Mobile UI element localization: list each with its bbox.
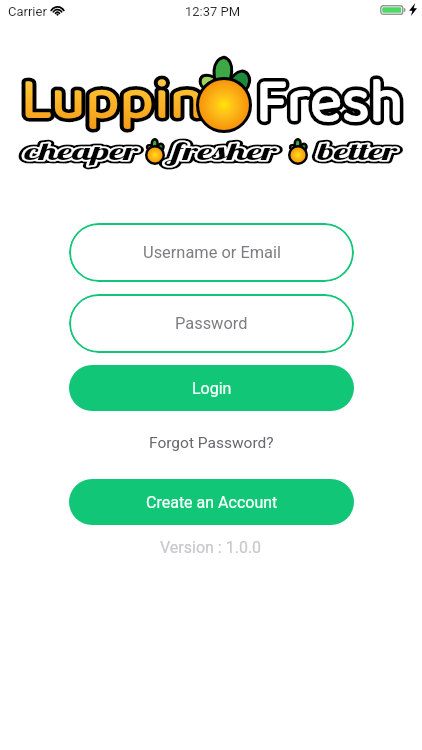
staticText: better [317,136,397,166]
staticText: Username or Email [143,243,281,262]
button[interactable]: Username or Email [69,223,354,282]
staticText: Login [192,379,232,398]
staticText: better [317,136,397,166]
staticText: cheaper [24,136,138,166]
button[interactable]: Login [69,365,354,411]
staticText: Create an Account [146,493,278,512]
staticText: fresher [172,136,277,166]
staticText: 12:37 PM [185,4,241,19]
staticText: Version : 1.0.0 [160,538,262,557]
staticText: Luppin [21,57,205,147]
button[interactable]: Forgot Password? [137,427,286,459]
button[interactable]: Password [69,294,354,353]
staticText: Password [175,314,248,333]
staticText: better [317,136,397,166]
staticText: Fresh [256,54,404,152]
staticText: fresher [172,136,277,166]
staticText: Luppin [21,57,205,147]
staticText: Forgot Password? [149,434,274,452]
staticText: cheaper [24,136,138,166]
staticText: Fresh [256,54,404,152]
staticText: cheaper [24,136,138,166]
button[interactable]: Create an Account [69,479,354,525]
staticText: fresher [172,136,277,166]
staticText: Carrier [8,4,47,19]
